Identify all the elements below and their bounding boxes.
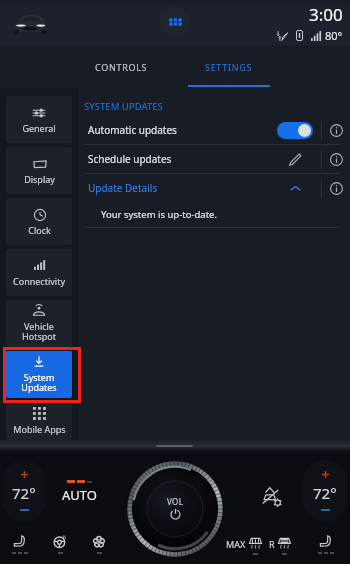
staticText: Update Details — [88, 181, 269, 195]
button[interactable]: General — [6, 96, 72, 143]
button[interactable]: Volume knob — [127, 461, 223, 557]
staticText: Your system is up-to-date. — [101, 208, 217, 221]
staticText: 72° — [313, 483, 337, 503]
button[interactable]: Mobile Apps — [6, 402, 72, 440]
button[interactable]: Update Details — [79, 174, 350, 202]
staticText: System Updates — [21, 371, 57, 394]
staticText: AUTO — [62, 486, 97, 504]
staticText: MAX — [226, 538, 246, 550]
staticText: CONTROLS — [95, 61, 148, 73]
staticText: Automatic updates — [88, 123, 269, 137]
button[interactable]: Info — [322, 174, 350, 202]
button[interactable]: Vehicle Hotspot — [6, 300, 72, 347]
button[interactable]: Front defrost — [258, 483, 286, 511]
button[interactable]: Collapse details — [284, 177, 306, 199]
staticText: Mobile Apps — [13, 423, 66, 435]
staticText: General — [22, 122, 56, 134]
staticText: 72° — [12, 483, 36, 503]
button[interactable]: Automatic updates — [79, 116, 350, 144]
button[interactable]: seat — [5, 535, 35, 554]
staticText: SETTINGS — [205, 61, 253, 73]
staticText: Vehicle Hotspot — [22, 320, 56, 343]
button[interactable]: fan — [84, 535, 114, 554]
button[interactable]: Display — [6, 147, 72, 194]
staticText: R — [269, 538, 275, 550]
button[interactable]: Connectivity — [6, 249, 72, 296]
staticText: Clock — [28, 224, 51, 236]
button[interactable]: CONTROLS — [68, 48, 175, 88]
button[interactable]: System Updates — [6, 351, 72, 398]
button[interactable]: Schedule updates — [79, 145, 350, 173]
button[interactable]: 72° — [2, 460, 46, 522]
button[interactable]: seat — [311, 535, 341, 554]
button[interactable]: AUTO — [54, 480, 104, 504]
staticText: Connectivity — [13, 275, 65, 287]
staticText: 80° — [325, 28, 343, 43]
staticText: VOL — [167, 496, 184, 507]
staticText: 3:00 — [309, 3, 343, 26]
staticText: Display — [24, 173, 55, 185]
button[interactable]: SETTINGS — [175, 48, 282, 88]
staticText: SYSTEM UPDATES — [84, 100, 163, 113]
button[interactable]: R reardefrost — [269, 535, 292, 555]
button[interactable]: Edit schedule — [284, 148, 306, 170]
button[interactable]: Automatic updates toggle — [277, 122, 313, 139]
staticText: Schedule updates — [88, 152, 269, 166]
button[interactable]: Info — [322, 116, 350, 144]
button[interactable]: Info — [322, 145, 350, 173]
button[interactable]: MAX maxdefrost — [226, 535, 263, 555]
button[interactable]: 72° — [303, 460, 347, 522]
button[interactable]: Clock — [6, 198, 72, 245]
button[interactable]: wheel — [45, 535, 75, 554]
button[interactable]: All apps — [160, 7, 190, 37]
